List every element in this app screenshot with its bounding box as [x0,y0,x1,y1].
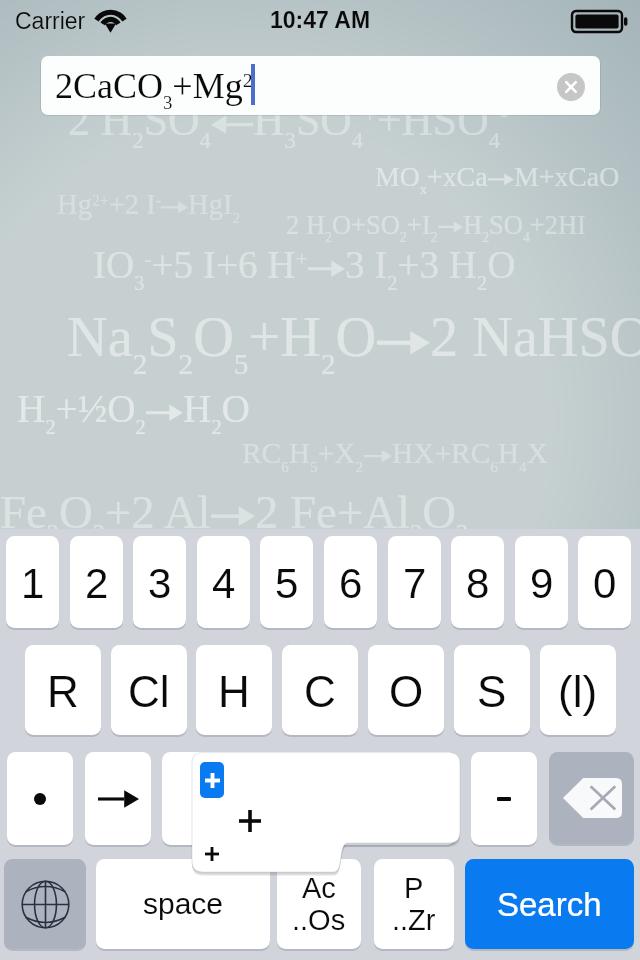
staticText: 6 [339,560,363,607]
button[interactable]: 0 [578,536,631,628]
button[interactable]: P [374,859,454,949]
button[interactable]: Dot [7,752,73,845]
button[interactable]: Search [465,859,634,949]
staticText: space [143,887,224,921]
button[interactable]: 9 [515,536,568,628]
staticText: Hg2++2 I- [57,189,161,221]
staticText: 3 [148,560,172,607]
staticText: 2 NaHSO3 [430,306,640,380]
button[interactable]: 6 [324,536,377,628]
button[interactable]: C [282,645,358,735]
staticText: HX+RC6H4X [392,437,548,476]
staticText: HgI2 [188,189,240,227]
button[interactable]: space [96,859,270,949]
staticText: 1 [21,560,45,607]
button[interactable]: Plus [162,752,456,845]
staticText: Na2S2O5+H2O [67,306,377,380]
staticText: 0 [593,560,617,607]
button[interactable]: O [368,645,444,735]
staticText: H2SO4+2HI [463,210,586,245]
staticText: RC6H5+X2 [242,437,364,476]
button[interactable]: 5 [260,536,313,628]
button[interactable]: 3 [133,536,186,628]
staticText: H2O [183,387,250,439]
staticText: M+xCaO [514,161,620,192]
staticText: H [218,667,250,716]
staticText: Fe2O3+2 Al [0,486,211,547]
button[interactable]: (l) [540,645,616,735]
staticText: 2CaCO3+Mg2 [55,66,253,113]
staticText: S [477,667,507,716]
staticText: Search [497,886,602,923]
staticText: 9 [530,560,554,607]
staticText: 2 Fe+Al2O3 [255,486,469,547]
button[interactable]: S [454,645,530,735]
staticText: Carrier [15,8,86,34]
staticText: 2 H2O+SO2+I2 [286,210,438,245]
staticText: 2 [85,560,109,607]
button[interactable]: 8 [451,536,504,628]
button[interactable]: Arrow [85,752,151,845]
button[interactable]: Plus variant [200,762,224,798]
staticText: Ac [302,872,336,904]
staticText: O [389,667,424,716]
staticText: 3 I2+3 H2O [345,243,516,294]
staticText: H3SO4++HSO4- [253,96,509,153]
staticText: Cl [128,667,170,716]
staticText: 2 H2SO4 [68,96,211,153]
staticText: 10:47 AM [270,7,371,33]
staticText: H2+½O2 [17,387,146,439]
button[interactable]: Plus [239,810,261,832]
button[interactable]: Plus small [205,847,219,861]
button[interactable]: Switch keyboard [4,859,86,949]
staticText: ..Os [292,904,346,936]
staticText: ..Zr [392,904,436,936]
staticText: R [47,667,79,716]
button[interactable]: 7 [388,536,441,628]
button[interactable] [41,56,600,115]
button[interactable]: R [25,645,101,735]
staticText: IO3-+5 I+6 H+ [93,243,308,294]
staticText: (l) [558,667,598,716]
button[interactable]: 1 [6,536,59,628]
staticText: MOx+xCa [375,161,488,197]
staticText: C [304,667,336,716]
button[interactable]: 2 [70,536,123,628]
staticText: 4 [212,560,236,607]
button[interactable]: Cl [111,645,187,735]
button[interactable]: H [196,645,272,735]
button[interactable]: Ac [277,859,361,949]
button[interactable]: Clear text [557,73,585,101]
staticText: 5 [275,560,299,607]
staticText: 7 [403,560,427,607]
button[interactable]: Backspace [549,752,634,844]
staticText: 8 [466,560,490,607]
staticText: P [404,872,424,904]
button[interactable]: 4 [197,536,250,628]
button[interactable]: Minus [471,752,537,845]
